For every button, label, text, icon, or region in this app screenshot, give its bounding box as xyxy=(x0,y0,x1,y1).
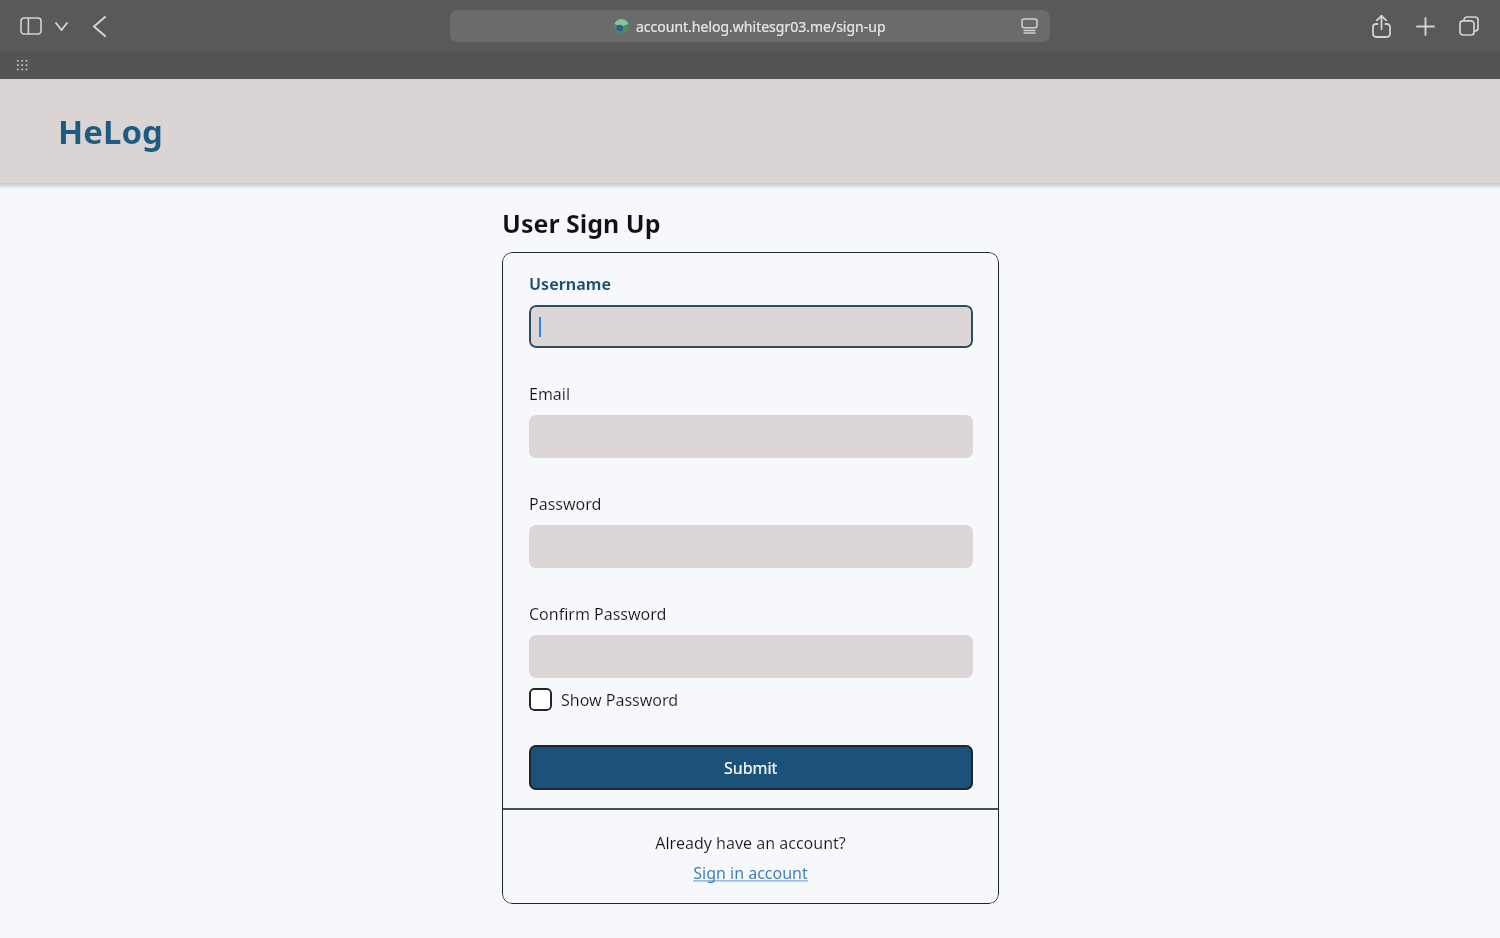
button[interactable]: Submit xyxy=(529,745,973,790)
button[interactable]: Show tabs xyxy=(1454,11,1484,41)
button[interactable]: account.helog.whitesgr03.me/sign-up xyxy=(450,10,1050,42)
button[interactable]: Reader view xyxy=(1018,15,1040,37)
button[interactable]: Back xyxy=(82,9,116,43)
staticText: Password xyxy=(529,493,602,515)
staticText: Sign in account xyxy=(693,862,808,884)
button[interactable] xyxy=(529,305,973,348)
staticText: Already have an account? xyxy=(655,832,846,854)
staticText: Submit xyxy=(724,757,778,779)
button[interactable]: Share xyxy=(1366,11,1396,41)
staticText: User Sign Up xyxy=(502,206,661,240)
staticText: Show Password xyxy=(561,689,679,711)
staticText: account.helog.whitesgr03.me/sign-up xyxy=(636,17,886,36)
button[interactable]: HeLog xyxy=(58,109,163,154)
button[interactable]: Sidebar options xyxy=(48,13,74,39)
button[interactable]: New tab xyxy=(1410,11,1440,41)
staticText: Username xyxy=(529,273,611,295)
button[interactable]: Show Password xyxy=(529,684,679,715)
button[interactable]: Favourites xyxy=(12,55,34,77)
staticText: Email xyxy=(529,383,571,405)
button[interactable]: Sign in account xyxy=(693,862,808,884)
button[interactable]: Show sidebar xyxy=(14,9,48,43)
staticText: Confirm Password xyxy=(529,603,667,625)
